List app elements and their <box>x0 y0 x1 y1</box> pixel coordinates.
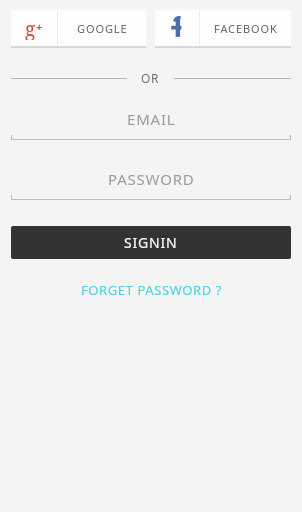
button[interactable]: Sign in with Google <box>11 10 146 46</box>
staticText: + <box>36 19 43 34</box>
staticText: g <box>25 16 36 40</box>
staticText: EMAIL <box>127 109 176 129</box>
staticText: SIGNIN <box>124 233 178 252</box>
button[interactable]: Sign in with Facebook <box>155 10 291 46</box>
staticText: GOOGLE <box>77 21 128 36</box>
button[interactable]: PASSWORD <box>11 166 291 203</box>
button[interactable]: FORGET PASSWORD ? <box>0 281 302 299</box>
staticText: OR <box>141 70 160 86</box>
staticText: FACEBOOK <box>214 21 278 36</box>
staticText: FORGET PASSWORD ? <box>81 281 222 299</box>
staticText: PASSWORD <box>108 169 195 189</box>
button[interactable]: EMAIL <box>11 106 291 143</box>
button[interactable]: SIGNIN <box>11 226 291 259</box>
